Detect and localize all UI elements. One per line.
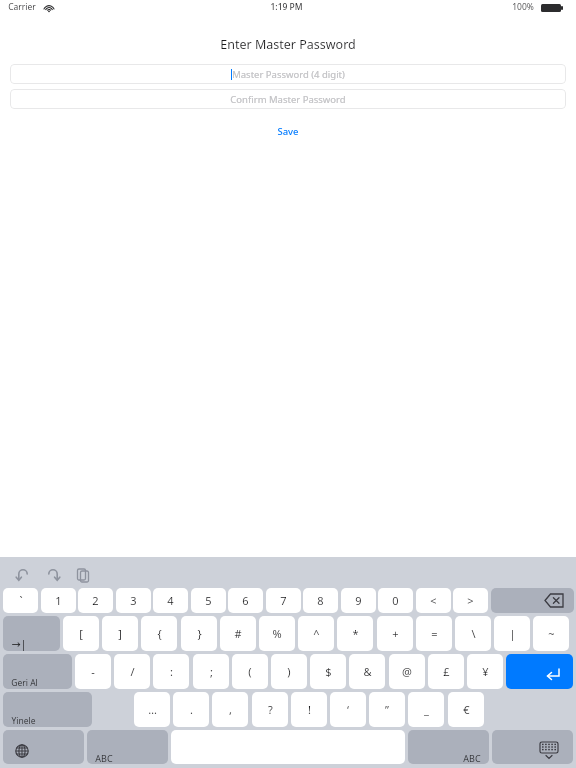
button[interactable]: 8 xyxy=(303,588,338,613)
button[interactable]: 3 xyxy=(116,588,151,613)
button[interactable]: & xyxy=(349,654,385,689)
button[interactable]: 6 xyxy=(228,588,263,613)
staticText: = xyxy=(431,626,438,641)
button[interactable]: : xyxy=(153,654,189,689)
button[interactable]: ” xyxy=(369,692,405,727)
staticText: . xyxy=(190,702,193,717)
button[interactable]: [ xyxy=(63,616,99,651)
staticText: @ xyxy=(402,664,412,679)
staticText: ‘ xyxy=(347,702,349,717)
staticText: + xyxy=(392,626,399,641)
button[interactable]: ABC xyxy=(87,730,168,764)
staticText: Yinele xyxy=(11,715,36,727)
button[interactable]: ) xyxy=(271,654,307,689)
staticText: 8 xyxy=(317,593,324,608)
button[interactable]: Geri Al xyxy=(3,654,72,689)
button[interactable]: | xyxy=(494,616,530,651)
staticText: 2 xyxy=(92,593,99,608)
button[interactable]: 9 xyxy=(341,588,376,613)
button[interactable]: < xyxy=(416,588,451,613)
staticText: Geri Al xyxy=(11,677,38,689)
staticText: < xyxy=(430,593,437,608)
button[interactable]: ( xyxy=(232,654,268,689)
button[interactable]: Next keyboard xyxy=(3,730,84,764)
button[interactable]: . xyxy=(173,692,209,727)
button[interactable]: + xyxy=(377,616,413,651)
button[interactable]: ` xyxy=(3,588,38,613)
button[interactable]: Yinele xyxy=(3,692,92,727)
button[interactable]: / xyxy=(114,654,150,689)
staticText: # xyxy=(234,626,242,641)
button[interactable]: # xyxy=(220,616,256,651)
button[interactable]: £ xyxy=(428,654,464,689)
button[interactable]: ] xyxy=(102,616,138,651)
staticText: Confirm Master Password xyxy=(230,93,346,106)
button[interactable]: ABC xyxy=(408,730,489,764)
button[interactable]: Undo xyxy=(10,565,36,585)
button[interactable]: @ xyxy=(389,654,425,689)
staticText: 5 xyxy=(205,593,212,608)
staticText: £ xyxy=(443,664,450,679)
button[interactable]: →| xyxy=(3,616,60,651)
staticText: % xyxy=(272,626,282,641)
staticText: , xyxy=(229,702,232,717)
button[interactable]: 2 xyxy=(78,588,113,613)
button[interactable]: Hide keyboard xyxy=(492,730,573,764)
button[interactable]: … xyxy=(134,692,170,727)
button[interactable]: > xyxy=(453,588,488,613)
staticText: _ xyxy=(424,702,429,717)
staticText: / xyxy=(130,664,135,679)
button[interactable]: ~ xyxy=(533,616,569,651)
staticText: ¥ xyxy=(482,664,489,679)
button[interactable]: ! xyxy=(291,692,327,727)
button[interactable]: * xyxy=(337,616,373,651)
button[interactable]: , xyxy=(212,692,248,727)
button[interactable]: - xyxy=(75,654,111,689)
staticText: 1 xyxy=(55,593,62,608)
button[interactable]: = xyxy=(416,616,452,651)
button[interactable]: 0 xyxy=(378,588,413,613)
button[interactable]: 1 xyxy=(41,588,76,613)
staticText: Save xyxy=(277,125,299,138)
button[interactable]: _ xyxy=(408,692,444,727)
button[interactable]: Master Password (4 digit) xyxy=(10,64,566,84)
button[interactable]: Save xyxy=(268,124,308,138)
staticText: 4 xyxy=(167,593,174,608)
button[interactable]: Confirm Master Password xyxy=(10,89,566,109)
button[interactable]: 4 xyxy=(153,588,188,613)
button[interactable]: ; xyxy=(193,654,229,689)
staticText: \ xyxy=(471,626,476,641)
staticText: ^ xyxy=(313,626,320,641)
button[interactable]: Return xyxy=(506,654,573,689)
staticText: Enter Master Password xyxy=(220,36,356,53)
button[interactable]: } xyxy=(181,616,217,651)
staticText: } xyxy=(197,626,202,641)
button[interactable]: 5 xyxy=(191,588,226,613)
button[interactable]: € xyxy=(448,692,484,727)
button[interactable]: { xyxy=(141,616,177,651)
button[interactable]: Paste xyxy=(71,565,95,585)
staticText: ~ xyxy=(548,626,555,641)
button[interactable]: Backspace xyxy=(491,588,574,613)
staticText: Carrier xyxy=(8,1,36,13)
staticText: * xyxy=(352,626,359,641)
staticText: ” xyxy=(385,702,389,717)
staticText: : xyxy=(170,664,173,679)
staticText: ? xyxy=(268,702,273,717)
button[interactable]: $ xyxy=(310,654,346,689)
button[interactable]: \ xyxy=(455,616,491,651)
button[interactable]: ^ xyxy=(298,616,334,651)
button[interactable]: ? xyxy=(252,692,288,727)
button[interactable]: Redo xyxy=(40,565,66,585)
staticText: ABC xyxy=(95,752,113,764)
staticText: ` xyxy=(19,593,23,608)
staticText: 3 xyxy=(130,593,137,608)
button[interactable]: ‘ xyxy=(330,692,366,727)
button[interactable]: % xyxy=(259,616,295,651)
button[interactable]: 7 xyxy=(266,588,301,613)
button[interactable]: ¥ xyxy=(467,654,503,689)
staticText: & xyxy=(363,664,372,679)
staticText: ; xyxy=(210,664,213,679)
staticText: | xyxy=(509,626,516,641)
